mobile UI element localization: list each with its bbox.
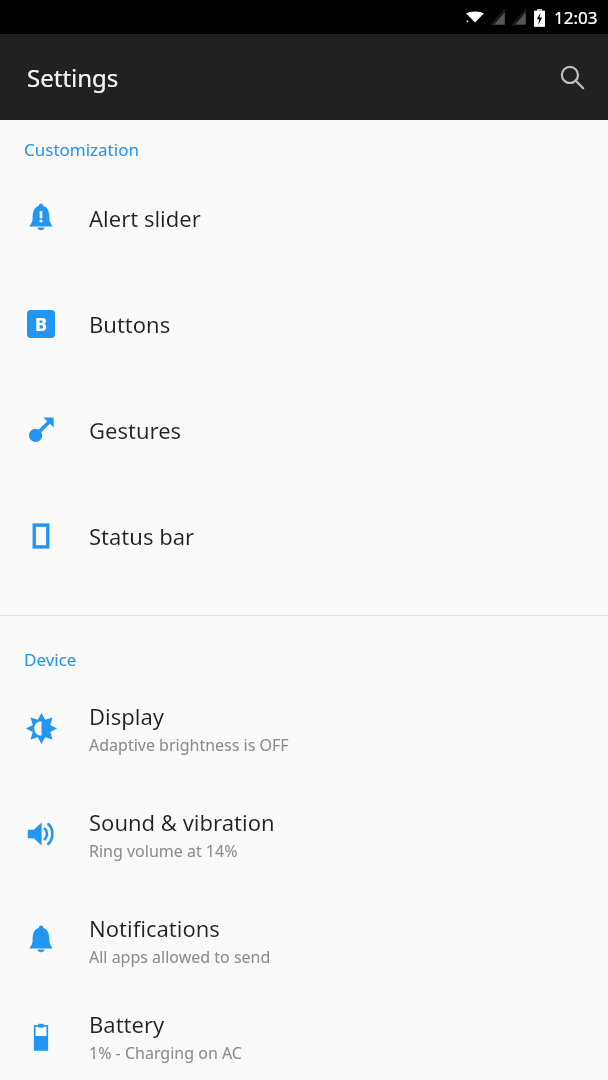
- button[interactable]: B: [0, 271, 608, 377]
- staticText: Device: [24, 648, 77, 671]
- staticText: Alert slider: [89, 203, 201, 233]
- staticText: Settings: [27, 61, 119, 94]
- button[interactable]: Battery: [0, 993, 608, 1080]
- button[interactable]: Notifications: [0, 887, 608, 993]
- button[interactable]: Sound & vibration: [0, 781, 608, 887]
- staticText: 12:03: [554, 6, 598, 29]
- staticText: All apps allowed to send: [89, 946, 271, 968]
- button[interactable]: Status bar: [0, 483, 608, 589]
- staticText: 1% - Charging on AC: [89, 1042, 242, 1064]
- staticText: Sound & vibration: [89, 807, 275, 837]
- button[interactable]: Search: [548, 53, 596, 101]
- staticText: Ring volume at 14%: [89, 840, 238, 862]
- button[interactable]: Alert slider: [0, 165, 608, 271]
- staticText: Display: [89, 701, 165, 731]
- staticText: B: [35, 312, 47, 337]
- staticText: Notifications: [89, 913, 220, 943]
- staticText: Buttons: [89, 309, 171, 339]
- button[interactable]: Gestures: [0, 377, 608, 483]
- staticText: Status bar: [89, 521, 195, 551]
- staticText: Adaptive brightness is OFF: [89, 734, 289, 756]
- staticText: Battery: [89, 1009, 165, 1039]
- staticText: Gestures: [89, 415, 182, 445]
- button[interactable]: Display: [0, 675, 608, 781]
- staticText: Customization: [24, 138, 139, 161]
